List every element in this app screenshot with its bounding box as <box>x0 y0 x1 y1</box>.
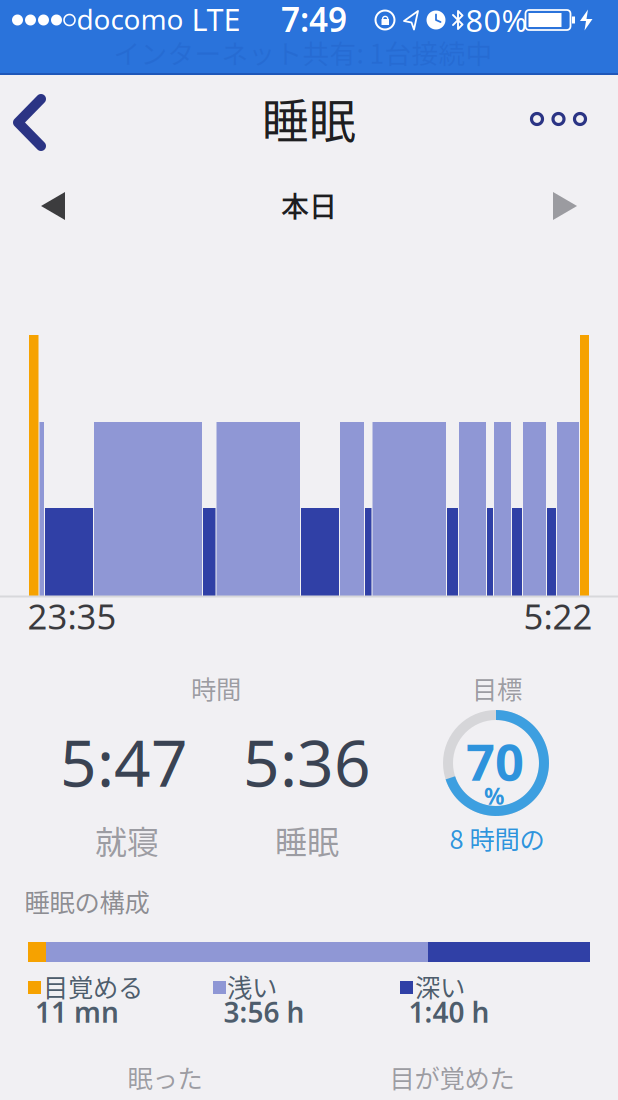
staticText: 5:22 <box>523 593 592 639</box>
staticText: 眠った <box>127 1059 202 1095</box>
staticText: 深い <box>415 968 465 1004</box>
staticText: 睡眠の構成 <box>24 883 149 919</box>
staticText: 70 <box>466 727 524 795</box>
staticText: 1:40 h <box>408 993 489 1031</box>
staticText: docomo <box>76 0 183 38</box>
button[interactable]: More options <box>523 107 593 131</box>
staticText: 80% <box>465 0 526 40</box>
staticText: 本日 <box>281 185 337 225</box>
staticText: 睡眠 <box>262 84 356 152</box>
staticText: 3:56 h <box>223 993 304 1031</box>
staticText: 目が覚めた <box>389 1059 514 1095</box>
staticText: 11 mn <box>35 993 119 1031</box>
staticText: LTE <box>191 0 240 39</box>
staticText: 浅い <box>227 968 277 1004</box>
staticText: 目標 <box>472 670 522 706</box>
button[interactable]: Next day <box>545 184 585 228</box>
staticText: 8 時間の <box>449 820 544 856</box>
staticText: % <box>484 781 504 811</box>
staticText: 7:49 <box>281 0 347 41</box>
staticText: 5:36 <box>243 719 371 804</box>
staticText: 目覚める <box>43 968 143 1004</box>
staticText: 23:35 <box>27 593 116 639</box>
staticText: 時間 <box>191 670 241 706</box>
staticText: 5:47 <box>60 719 188 804</box>
staticText: 就寝 <box>95 817 159 863</box>
button[interactable]: Back <box>10 91 49 154</box>
button[interactable]: Previous day <box>33 184 73 228</box>
staticText: 睡眠 <box>275 817 339 863</box>
